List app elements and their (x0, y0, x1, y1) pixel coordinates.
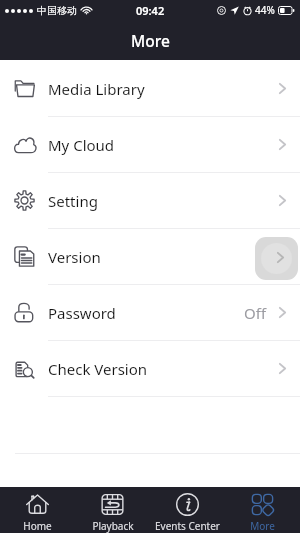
button[interactable]: More (225, 487, 300, 533)
staticText: Playback (92, 519, 134, 533)
button[interactable]: My Cloud (0, 116, 300, 172)
button[interactable]: Version (0, 228, 300, 284)
staticText: 44% (255, 3, 275, 17)
button[interactable]: Home (0, 487, 75, 533)
staticText: Events Center (155, 519, 220, 533)
staticText: 中国移动 (37, 4, 77, 17)
staticText: Media Library (48, 79, 145, 99)
staticText: Version (48, 247, 101, 267)
staticText: Off (244, 303, 267, 323)
staticText: Home (23, 519, 52, 533)
staticText: More (131, 30, 170, 51)
staticText: More (250, 519, 275, 533)
button[interactable]: Playback (75, 487, 150, 533)
staticText: Check Version (48, 359, 148, 379)
staticText: 09:42 (136, 3, 165, 18)
staticText: Password (48, 303, 116, 323)
button[interactable]: Media Library (0, 60, 300, 116)
staticText: My Cloud (48, 135, 115, 155)
staticText: Setting (48, 191, 98, 211)
button[interactable]: Setting (0, 172, 300, 228)
button[interactable]: Events Center (150, 487, 225, 533)
button[interactable]: Password (0, 284, 300, 340)
button[interactable]: Check Version (0, 340, 300, 396)
